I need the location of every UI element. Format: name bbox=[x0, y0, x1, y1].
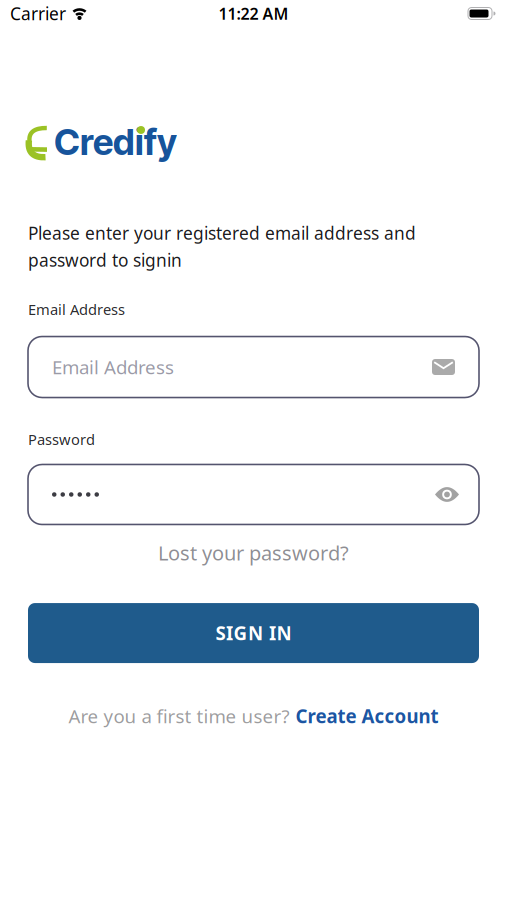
staticText: Password bbox=[28, 429, 95, 449]
staticText: Carrier bbox=[10, 2, 66, 25]
staticText: Email Address bbox=[28, 299, 125, 319]
button[interactable]: Create Account bbox=[295, 703, 438, 728]
button[interactable] bbox=[28, 464, 479, 524]
staticText: 11:22 AM bbox=[218, 3, 288, 24]
button[interactable] bbox=[435, 485, 459, 503]
staticText: Email Address bbox=[52, 355, 174, 379]
staticText: Credify bbox=[54, 120, 177, 164]
staticText: Create Account bbox=[295, 703, 438, 728]
button[interactable]: SIGN IN bbox=[28, 603, 479, 663]
staticText: Are you a first time user? bbox=[68, 703, 289, 728]
button[interactable]: Lost your password? bbox=[158, 539, 349, 566]
staticText: SIGN IN bbox=[215, 621, 291, 645]
staticText: Lost your password? bbox=[158, 539, 349, 566]
button[interactable]: Email Address bbox=[28, 336, 479, 397]
staticText: Please enter your registered email addre… bbox=[28, 221, 416, 271]
